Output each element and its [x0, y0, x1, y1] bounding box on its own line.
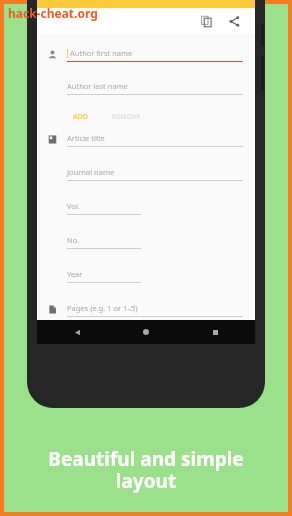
staticText: Beautiful and simple layout [0, 446, 292, 494]
staticText: No. [67, 235, 80, 245]
button[interactable]: Back [67, 322, 87, 342]
button[interactable]: Author last name [37, 81, 255, 103]
staticText: Article title [67, 133, 105, 143]
button[interactable]: Author first name [37, 48, 255, 70]
staticText: hack-cheat.org [8, 5, 98, 21]
button[interactable]: Journal name [37, 167, 255, 189]
staticText: Pages (e.g. 1 or 1–5) [67, 303, 138, 313]
button[interactable]: Share [223, 10, 245, 32]
staticText: Journal name [67, 167, 115, 177]
staticText: REMOVE [112, 112, 141, 122]
staticText: Author last name [67, 81, 128, 91]
button[interactable]: Pages (e.g. 1 or 1–5) [37, 303, 255, 320]
button[interactable]: ADD [67, 109, 94, 125]
button[interactable]: Home [136, 322, 156, 342]
staticText: Year [67, 269, 83, 279]
button[interactable]: Article title [37, 133, 255, 155]
staticText: Author first name [70, 48, 133, 58]
button[interactable]: No. [37, 235, 255, 257]
staticText: ADD [73, 112, 88, 122]
button[interactable]: REMOVE [106, 109, 147, 125]
button[interactable]: Vol. [37, 201, 255, 223]
button[interactable]: Recent apps [205, 322, 225, 342]
button[interactable]: Year [37, 269, 255, 291]
staticText: Vol. [67, 201, 80, 211]
button[interactable]: Copy [195, 10, 217, 32]
